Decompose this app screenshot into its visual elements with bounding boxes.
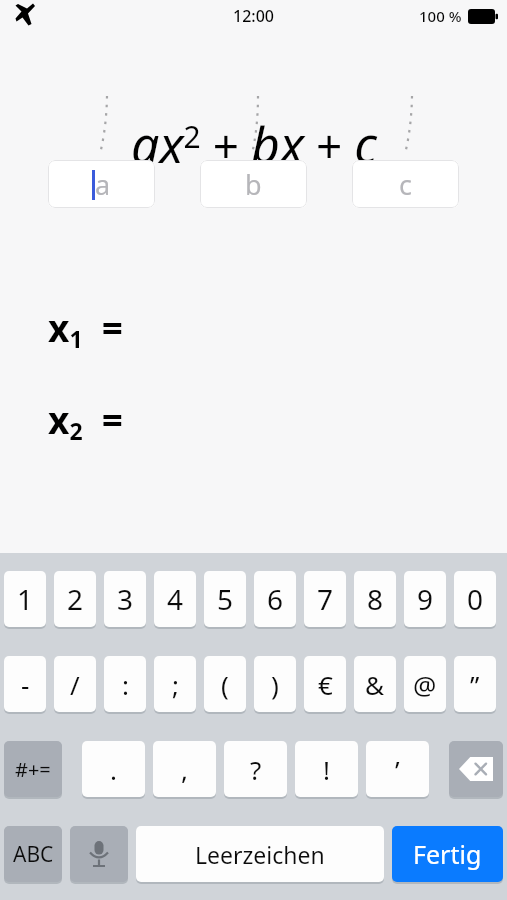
button[interactable]: b: [200, 160, 307, 208]
button[interactable]: €: [304, 656, 346, 713]
button[interactable]: ,: [153, 741, 216, 798]
staticText: a: [95, 166, 111, 203]
staticText: @: [413, 667, 437, 702]
staticText: x1 =: [48, 302, 123, 355]
staticText: :: [122, 667, 129, 702]
staticText: 7: [317, 580, 334, 618]
button[interactable]: ’: [366, 741, 429, 798]
button[interactable]: 1: [4, 571, 46, 628]
button[interactable]: ;: [154, 656, 196, 713]
button[interactable]: 4: [154, 571, 196, 628]
staticText: 0: [467, 580, 484, 618]
staticText: 6: [267, 580, 284, 618]
staticText: 9: [417, 580, 434, 618]
button[interactable]: 5: [204, 571, 246, 628]
button[interactable]: ): [254, 656, 296, 713]
button[interactable]: .: [82, 741, 145, 798]
button[interactable]: Leerzeichen: [136, 826, 384, 883]
staticText: 2: [67, 580, 84, 618]
button[interactable]: 3: [104, 571, 146, 628]
staticText: 3: [117, 580, 134, 618]
button[interactable]: /: [54, 656, 96, 713]
staticText: ”: [470, 667, 480, 702]
staticText: €: [318, 667, 333, 702]
button[interactable]: ”: [454, 656, 496, 713]
staticText: Fertig: [413, 837, 482, 871]
staticText: 5: [217, 580, 234, 618]
button[interactable]: -: [4, 656, 46, 713]
button[interactable]: !: [295, 741, 358, 798]
staticText: c: [399, 166, 412, 203]
staticText: !: [323, 752, 330, 787]
button[interactable]: a: [48, 160, 155, 208]
staticText: ): [271, 667, 279, 702]
button[interactable]: ?: [224, 741, 287, 798]
staticText: .: [110, 752, 117, 787]
button[interactable]: 9: [404, 571, 446, 628]
staticText: 12:00: [233, 5, 274, 27]
staticText: &: [365, 667, 385, 702]
button[interactable]: Backspace: [449, 741, 503, 798]
staticText: x2 =: [48, 394, 123, 447]
button[interactable]: 6: [254, 571, 296, 628]
button[interactable]: 0: [454, 571, 496, 628]
staticText: 8: [367, 580, 384, 618]
staticText: 4: [167, 580, 184, 618]
staticText: 100 %: [419, 6, 462, 26]
button[interactable]: #+=: [4, 741, 62, 798]
button[interactable]: Dictation: [70, 826, 128, 883]
staticText: ABC: [13, 840, 54, 869]
button[interactable]: Fertig: [392, 826, 503, 883]
staticText: ,: [181, 752, 188, 787]
button[interactable]: ABC: [4, 826, 62, 883]
staticText: -: [21, 667, 30, 702]
button[interactable]: @: [404, 656, 446, 713]
staticText: (: [221, 667, 229, 702]
button[interactable]: c: [352, 160, 459, 208]
staticText: 1: [17, 580, 34, 618]
button[interactable]: 8: [354, 571, 396, 628]
staticText: b: [245, 166, 262, 203]
staticText: ?: [250, 752, 262, 787]
button[interactable]: (: [204, 656, 246, 713]
staticText: ;: [172, 667, 179, 702]
staticText: ax2 + bx + c: [131, 110, 377, 178]
staticText: #+=: [15, 756, 51, 783]
button[interactable]: 7: [304, 571, 346, 628]
staticText: /: [70, 667, 80, 702]
button[interactable]: &: [354, 656, 396, 713]
button[interactable]: 2: [54, 571, 96, 628]
button[interactable]: :: [104, 656, 146, 713]
staticText: ’: [395, 752, 400, 787]
staticText: Leerzeichen: [195, 839, 325, 870]
